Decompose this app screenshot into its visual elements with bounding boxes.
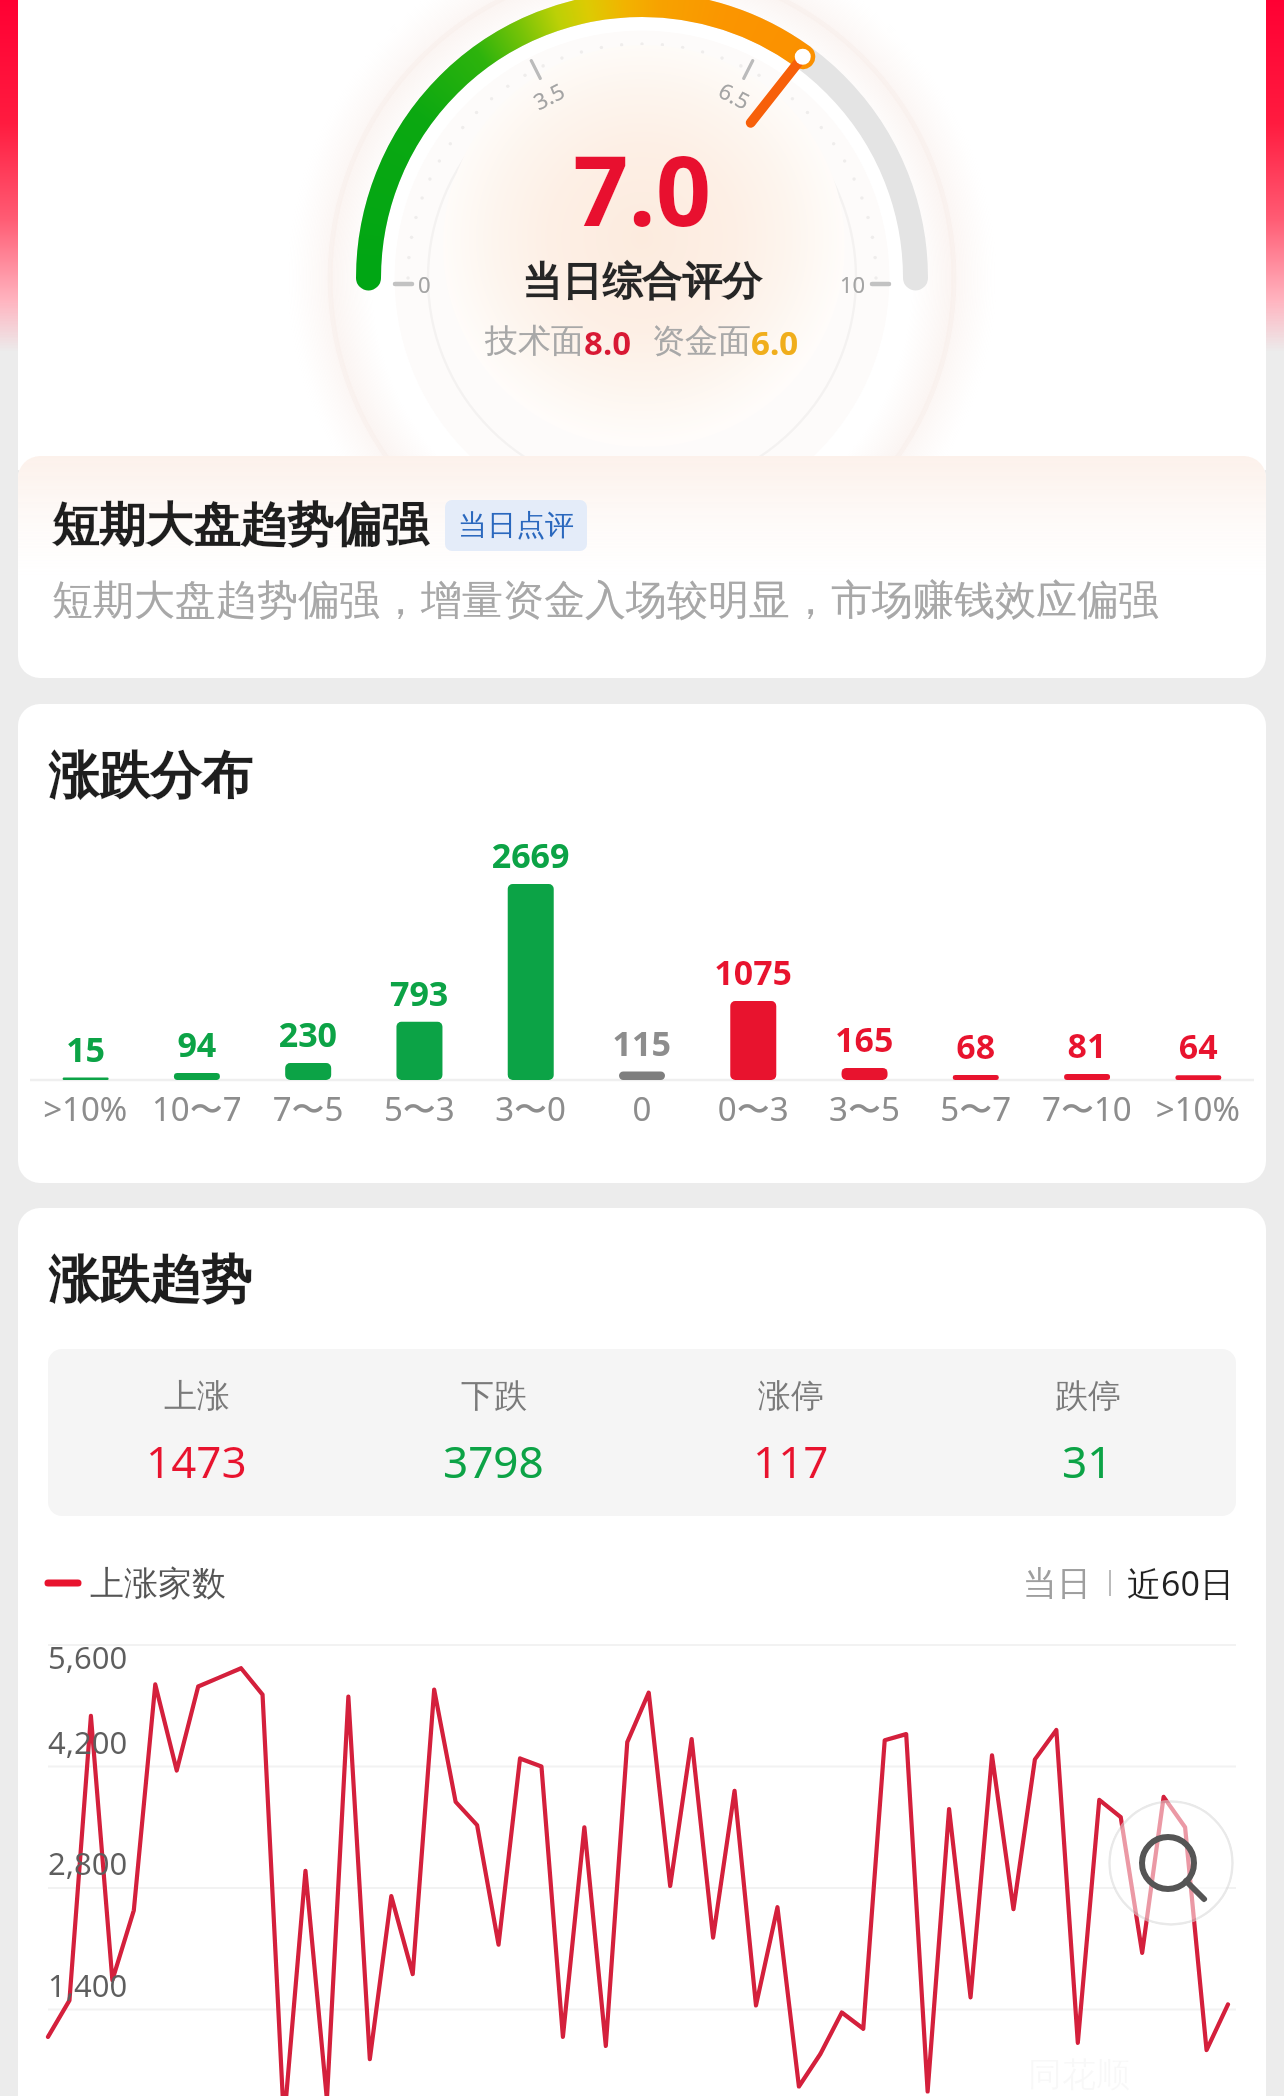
button[interactable]: 跌停 [939,1375,1236,1491]
button[interactable]: 涨跌分布 [18,704,1266,1183]
staticText: 上涨家数 [90,1562,226,1605]
staticText: 8.0 [584,320,632,365]
staticText: 当日 [1023,1562,1091,1605]
button[interactable]: 涨停 [642,1375,939,1491]
staticText: 6.0 [751,320,799,365]
staticText: 下跌 [461,1375,527,1417]
staticText: 近60日 [1127,1560,1234,1606]
button[interactable]: 下跌 [345,1375,642,1491]
button[interactable]: 涨跌趋势 [18,1208,1266,2096]
staticText: 技术面 [485,320,584,362]
staticText: 31 [1062,1431,1113,1491]
staticText: 7.0 [573,122,712,254]
staticText: 涨停 [758,1375,824,1417]
staticText: 当日综合评分 [522,256,762,306]
button[interactable]: 上涨 [48,1375,345,1491]
staticText: 短期大盘趋势偏强，增量资金入场较明显，市场赚钱效应偏强 [52,575,1159,627]
staticText: 当日点评 [458,507,574,544]
button[interactable]: 近60日 [1125,1560,1236,1606]
button[interactable]: 短期大盘趋势偏强 [18,456,1266,678]
button[interactable]: 当日 [1019,1562,1095,1605]
staticText: 117 [753,1431,829,1491]
staticText: 3798 [443,1431,544,1491]
staticText: 短期大盘趋势偏强 [52,496,428,555]
staticText: 资金面 [652,320,751,362]
staticText: 跌停 [1055,1375,1121,1417]
staticText: 涨跌分布 [48,744,252,808]
button[interactable]: Zoom [1108,1800,1234,1926]
staticText: 上涨 [164,1375,230,1417]
staticText: 1473 [146,1431,247,1491]
staticText: 涨跌趋势 [48,1248,252,1312]
